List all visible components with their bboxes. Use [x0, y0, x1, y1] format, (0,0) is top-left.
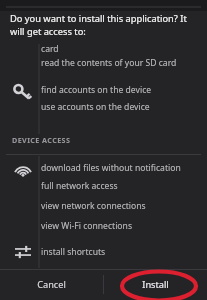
button[interactable]: Cancel — [0, 269, 103, 300]
button[interactable]: view Wi-Fi connections — [41, 220, 132, 232]
staticText: view Wi-Fi connections — [41, 220, 132, 232]
staticText: view network connections — [41, 200, 146, 212]
staticText: download files without notification — [41, 162, 181, 174]
button[interactable]: download files without notification — [41, 162, 181, 174]
button[interactable]: read the contents of your SD card — [41, 57, 177, 69]
button[interactable]: card — [41, 44, 59, 55]
staticText: find accounts on the device — [41, 84, 152, 96]
staticText: Install — [142, 278, 169, 291]
button[interactable]: find accounts on the device — [41, 84, 152, 96]
staticText: DEVICE ACCESS — [12, 135, 71, 145]
other: Shortcuts permission — [13, 243, 33, 261]
other: Network permission — [13, 162, 33, 179]
staticText: full network access — [41, 180, 118, 192]
staticText: use accounts on the device — [41, 101, 150, 113]
button[interactable]: use accounts on the device — [41, 101, 150, 113]
button[interactable]: Install — [104, 269, 207, 300]
staticText: Do you want to install this application?… — [10, 12, 187, 25]
staticText: card — [41, 44, 59, 55]
staticText: will get access to: — [10, 25, 86, 38]
button[interactable]: full network access — [41, 180, 118, 192]
staticText: install shortcuts — [41, 246, 106, 258]
other: Accounts permission — [13, 83, 33, 101]
button[interactable]: view network connections — [41, 200, 146, 212]
staticText: read the contents of your SD card — [41, 57, 177, 69]
button[interactable]: install shortcuts — [41, 246, 106, 258]
staticText: Cancel — [37, 278, 66, 291]
